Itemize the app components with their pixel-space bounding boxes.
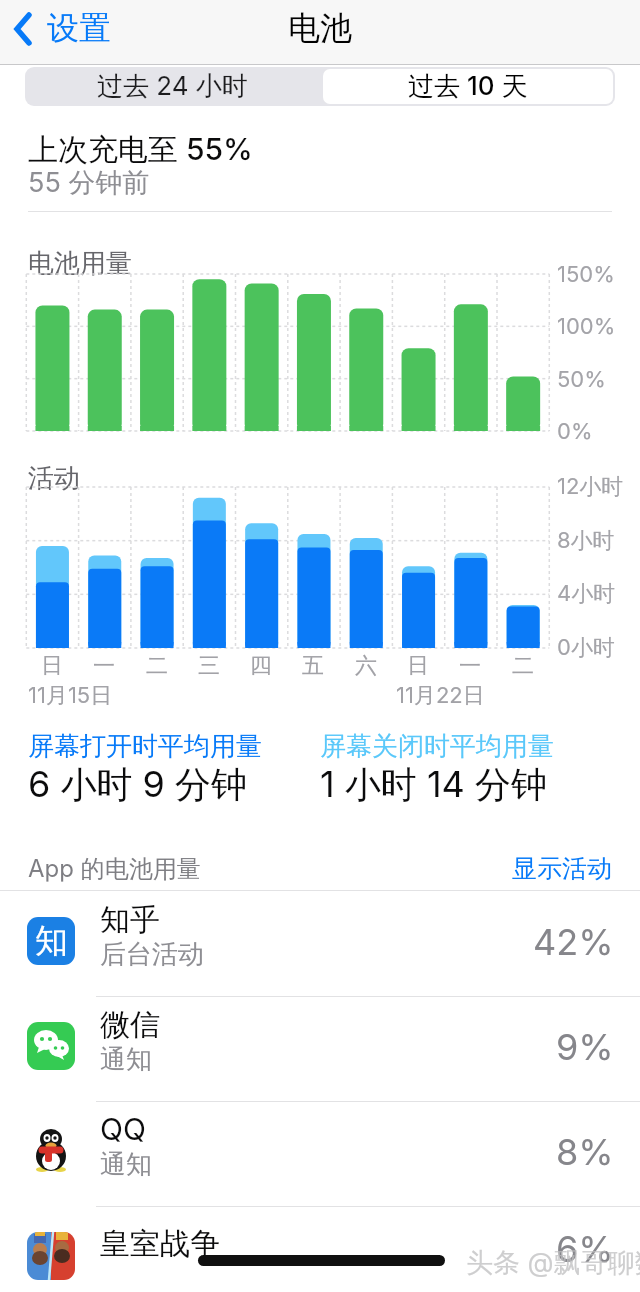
button[interactable]: 微信 [0, 997, 640, 1102]
button[interactable]: 知 [0, 892, 640, 997]
staticText: 通知 [100, 1043, 152, 1076]
staticText: 一 [459, 652, 481, 680]
staticText: 8小时 [557, 527, 615, 555]
staticText: 8% [556, 1130, 614, 1174]
staticText: 二 [512, 652, 534, 680]
staticText: 活动 [28, 462, 80, 495]
staticText: 显示活动 [512, 853, 612, 884]
button[interactable]: 显示活动 [0, 853, 612, 884]
staticText: 通知 [100, 1148, 152, 1181]
staticText: 55 分钟前 [28, 166, 150, 200]
staticText: 12小时 [557, 473, 624, 501]
staticText: 六 [355, 652, 377, 680]
staticText: 四 [250, 652, 272, 680]
button[interactable]: 过去 24 小时 [25, 67, 320, 106]
staticText: 6% [556, 1227, 614, 1271]
staticText: 9% [556, 1025, 614, 1069]
staticText: 电池 [288, 8, 352, 48]
staticText: 11月22日 [396, 682, 485, 710]
staticText: 0小时 [557, 634, 615, 662]
staticText: 知乎 [100, 901, 160, 939]
button[interactable]: 过去 10 天 [323, 69, 613, 104]
button[interactable]: 设置 [6, 4, 154, 60]
staticText: 1 小时 14 分钟 [320, 762, 547, 808]
staticText: 4小时 [557, 580, 616, 608]
staticText: 42% [533, 920, 614, 964]
button[interactable]: 皇室战争 [0, 1207, 640, 1292]
staticText: 50% [557, 366, 606, 393]
staticText: 日 [41, 652, 63, 680]
staticText: 11月15日 [28, 682, 113, 710]
staticText: 知 [35, 920, 68, 962]
staticText: 日 [407, 652, 429, 680]
staticText: 100% [557, 313, 616, 340]
staticText: 后台活动 [100, 938, 204, 971]
staticText: 150% [557, 261, 615, 288]
staticText: 三 [198, 652, 220, 680]
staticText: 五 [302, 652, 324, 680]
staticText: 上次充电至 55% [28, 131, 253, 169]
staticText: 微信 [100, 1006, 160, 1044]
staticText: 过去 24 小时 [97, 70, 248, 103]
staticText: 一 [93, 652, 115, 680]
staticText: 0% [557, 418, 593, 445]
button[interactable]: QQ [0, 1102, 640, 1207]
staticText: 屏幕打开时平均用量 [28, 730, 262, 763]
staticText: 过去 10 天 [408, 70, 528, 103]
staticText: 二 [146, 652, 168, 680]
staticText: 皇室战争 [100, 1225, 220, 1263]
staticText: 设置 [47, 8, 111, 48]
staticText: 6 小时 9 分钟 [28, 762, 248, 808]
staticText: 头条 @飘哥聊数码 [466, 1246, 640, 1280]
staticText: QQ [100, 1111, 146, 1147]
staticText: 电池用量 [28, 247, 132, 280]
staticText: 屏幕关闭时平均用量 [320, 730, 554, 763]
staticText: App 的电池用量 [28, 854, 201, 884]
